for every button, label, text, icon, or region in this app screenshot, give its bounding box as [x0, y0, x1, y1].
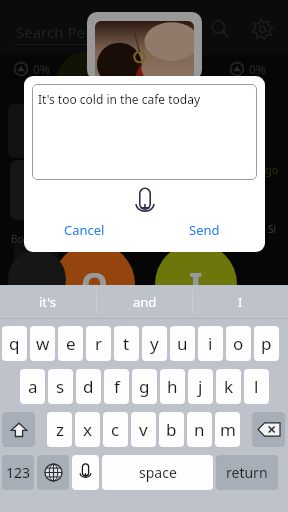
staticText: e — [66, 332, 76, 355]
button[interactable]: Cancel — [24, 218, 144, 242]
staticText: r — [95, 332, 103, 355]
staticText: i — [208, 332, 213, 355]
button[interactable]: It's too cold in the cafe today — [32, 84, 257, 180]
button[interactable]: h — [160, 369, 185, 404]
button[interactable]: q — [2, 326, 27, 361]
staticText: g — [139, 375, 150, 398]
staticText: Bo — [11, 232, 24, 246]
button[interactable]: z — [47, 412, 72, 447]
button[interactable]: it's — [0, 285, 96, 318]
staticText: x — [83, 418, 92, 441]
staticText: Send — [189, 221, 220, 239]
staticText: and — [133, 293, 157, 311]
staticText: q — [9, 332, 20, 355]
button[interactable]: b — [159, 412, 184, 447]
staticText: space — [139, 463, 177, 482]
staticText: go — [265, 162, 279, 177]
button[interactable]: k — [216, 369, 241, 404]
staticText: 123 — [6, 463, 31, 482]
button[interactable]: w — [30, 326, 55, 361]
staticText: It's too cold in the cafe today — [38, 91, 201, 107]
button[interactable]: Shift — [2, 412, 35, 447]
button[interactable]: p — [254, 326, 279, 361]
staticText: s — [56, 375, 65, 398]
button[interactable]: n — [187, 412, 212, 447]
staticText: a — [28, 375, 38, 398]
button[interactable]: Switch keyboard — [37, 455, 69, 490]
staticText: m — [220, 418, 236, 441]
staticText: return — [226, 463, 268, 482]
staticText: j — [198, 375, 203, 398]
staticText: it's — [39, 293, 57, 311]
button[interactable]: Backspace — [252, 412, 285, 447]
button[interactable]: d — [76, 369, 101, 404]
staticText: Search Pe — [16, 22, 85, 42]
staticText: t — [123, 332, 130, 355]
button[interactable]: j — [188, 369, 213, 404]
button[interactable]: return — [216, 455, 278, 490]
button[interactable]: and — [97, 285, 192, 318]
button[interactable]: Search — [206, 15, 234, 43]
staticText: I — [189, 261, 203, 307]
button[interactable]: v — [131, 412, 156, 447]
staticText: y — [150, 332, 159, 355]
button[interactable]: I — [193, 285, 288, 318]
staticText: w — [36, 332, 50, 355]
button[interactable]: x — [75, 412, 100, 447]
button[interactable] — [87, 12, 202, 80]
button[interactable]: e — [58, 326, 83, 361]
button[interactable]: 123 — [2, 455, 34, 490]
button[interactable]: Dictate — [128, 186, 162, 220]
button[interactable]: c — [103, 412, 128, 447]
button[interactable]: f — [104, 369, 129, 404]
button[interactable]: s — [48, 369, 73, 404]
button[interactable]: space — [102, 455, 213, 490]
staticText: I — [238, 293, 243, 311]
staticText: Cancel — [64, 221, 105, 239]
staticText: u — [177, 332, 188, 355]
button[interactable]: Voice input — [72, 455, 99, 490]
button[interactable]: t — [114, 326, 139, 361]
staticText: h — [167, 375, 178, 398]
button[interactable]: y — [142, 326, 167, 361]
staticText: O — [81, 261, 108, 307]
staticText: Si — [268, 222, 277, 236]
button[interactable]: Settings — [247, 14, 277, 44]
staticText: 0% — [33, 61, 50, 77]
button[interactable]: g — [132, 369, 157, 404]
button[interactable]: i — [198, 326, 223, 361]
button[interactable]: l — [244, 369, 269, 404]
staticText: b — [166, 418, 177, 441]
staticText: c — [111, 418, 120, 441]
staticText: z — [56, 418, 64, 441]
button[interactable]: m — [215, 412, 240, 447]
button[interactable]: u — [170, 326, 195, 361]
staticText: n — [194, 418, 205, 441]
staticText: 0% — [249, 61, 266, 77]
staticText: k — [224, 375, 234, 398]
button[interactable]: o — [226, 326, 251, 361]
staticText: v — [139, 418, 148, 441]
staticText: d — [83, 375, 94, 398]
staticText: o — [233, 332, 244, 355]
button[interactable]: a — [20, 369, 45, 404]
staticText: p — [261, 332, 272, 355]
staticText: l — [254, 375, 259, 398]
staticText: f — [114, 375, 120, 398]
button[interactable]: r — [86, 326, 111, 361]
button[interactable]: Send — [144, 218, 265, 242]
